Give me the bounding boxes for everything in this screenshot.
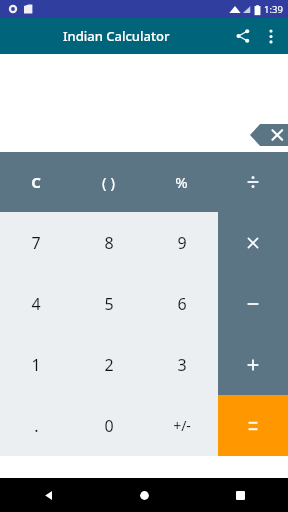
button[interactable]: More options — [258, 23, 284, 49]
staticText: ( ) — [102, 172, 115, 192]
button[interactable]: 6 — [145, 273, 218, 334]
button[interactable]: Share — [228, 21, 258, 51]
staticText: 9 — [177, 232, 187, 254]
staticText: 0 — [104, 415, 114, 437]
button[interactable]: +/- — [145, 395, 218, 456]
button[interactable]: Operator — [218, 212, 288, 273]
staticText: +/- — [173, 416, 191, 435]
staticText: 6 — [177, 293, 187, 315]
button[interactable]: 9 — [145, 212, 218, 273]
button[interactable]: Operator — [218, 334, 288, 395]
button[interactable]: Recent apps — [192, 478, 288, 512]
staticText: 7 — [31, 232, 41, 254]
button[interactable]: Backspace — [250, 124, 288, 146]
staticText: 2 — [104, 354, 114, 376]
button[interactable]: Home — [96, 478, 192, 512]
button[interactable]: ( ) — [72, 152, 145, 212]
button[interactable]: Operator — [218, 273, 288, 334]
staticText: 5 — [104, 293, 114, 315]
button[interactable]: Back — [0, 478, 96, 512]
button[interactable]: 3 — [145, 334, 218, 395]
staticText: 8 — [104, 232, 114, 254]
button[interactable]: . — [0, 395, 72, 456]
staticText: C — [31, 172, 41, 192]
button[interactable]: 0 — [72, 395, 145, 456]
button[interactable]: 4 — [0, 273, 72, 334]
staticText: 1:39 — [264, 3, 283, 16]
staticText: Indian Calculator — [63, 27, 170, 45]
button[interactable]: 2 — [72, 334, 145, 395]
staticText: 4 — [31, 293, 41, 315]
button[interactable]: 1 — [0, 334, 72, 395]
button[interactable]: % — [145, 152, 218, 212]
button[interactable]: 8 — [72, 212, 145, 273]
button[interactable]: C — [0, 152, 72, 212]
button[interactable]: Equals — [218, 395, 288, 456]
button[interactable]: Operator — [218, 152, 288, 212]
staticText: 1 — [31, 354, 41, 376]
staticText: % — [175, 172, 188, 192]
staticText: 3 — [177, 354, 187, 376]
button[interactable]: 5 — [72, 273, 145, 334]
staticText: . — [34, 415, 39, 437]
button[interactable]: 7 — [0, 212, 72, 273]
